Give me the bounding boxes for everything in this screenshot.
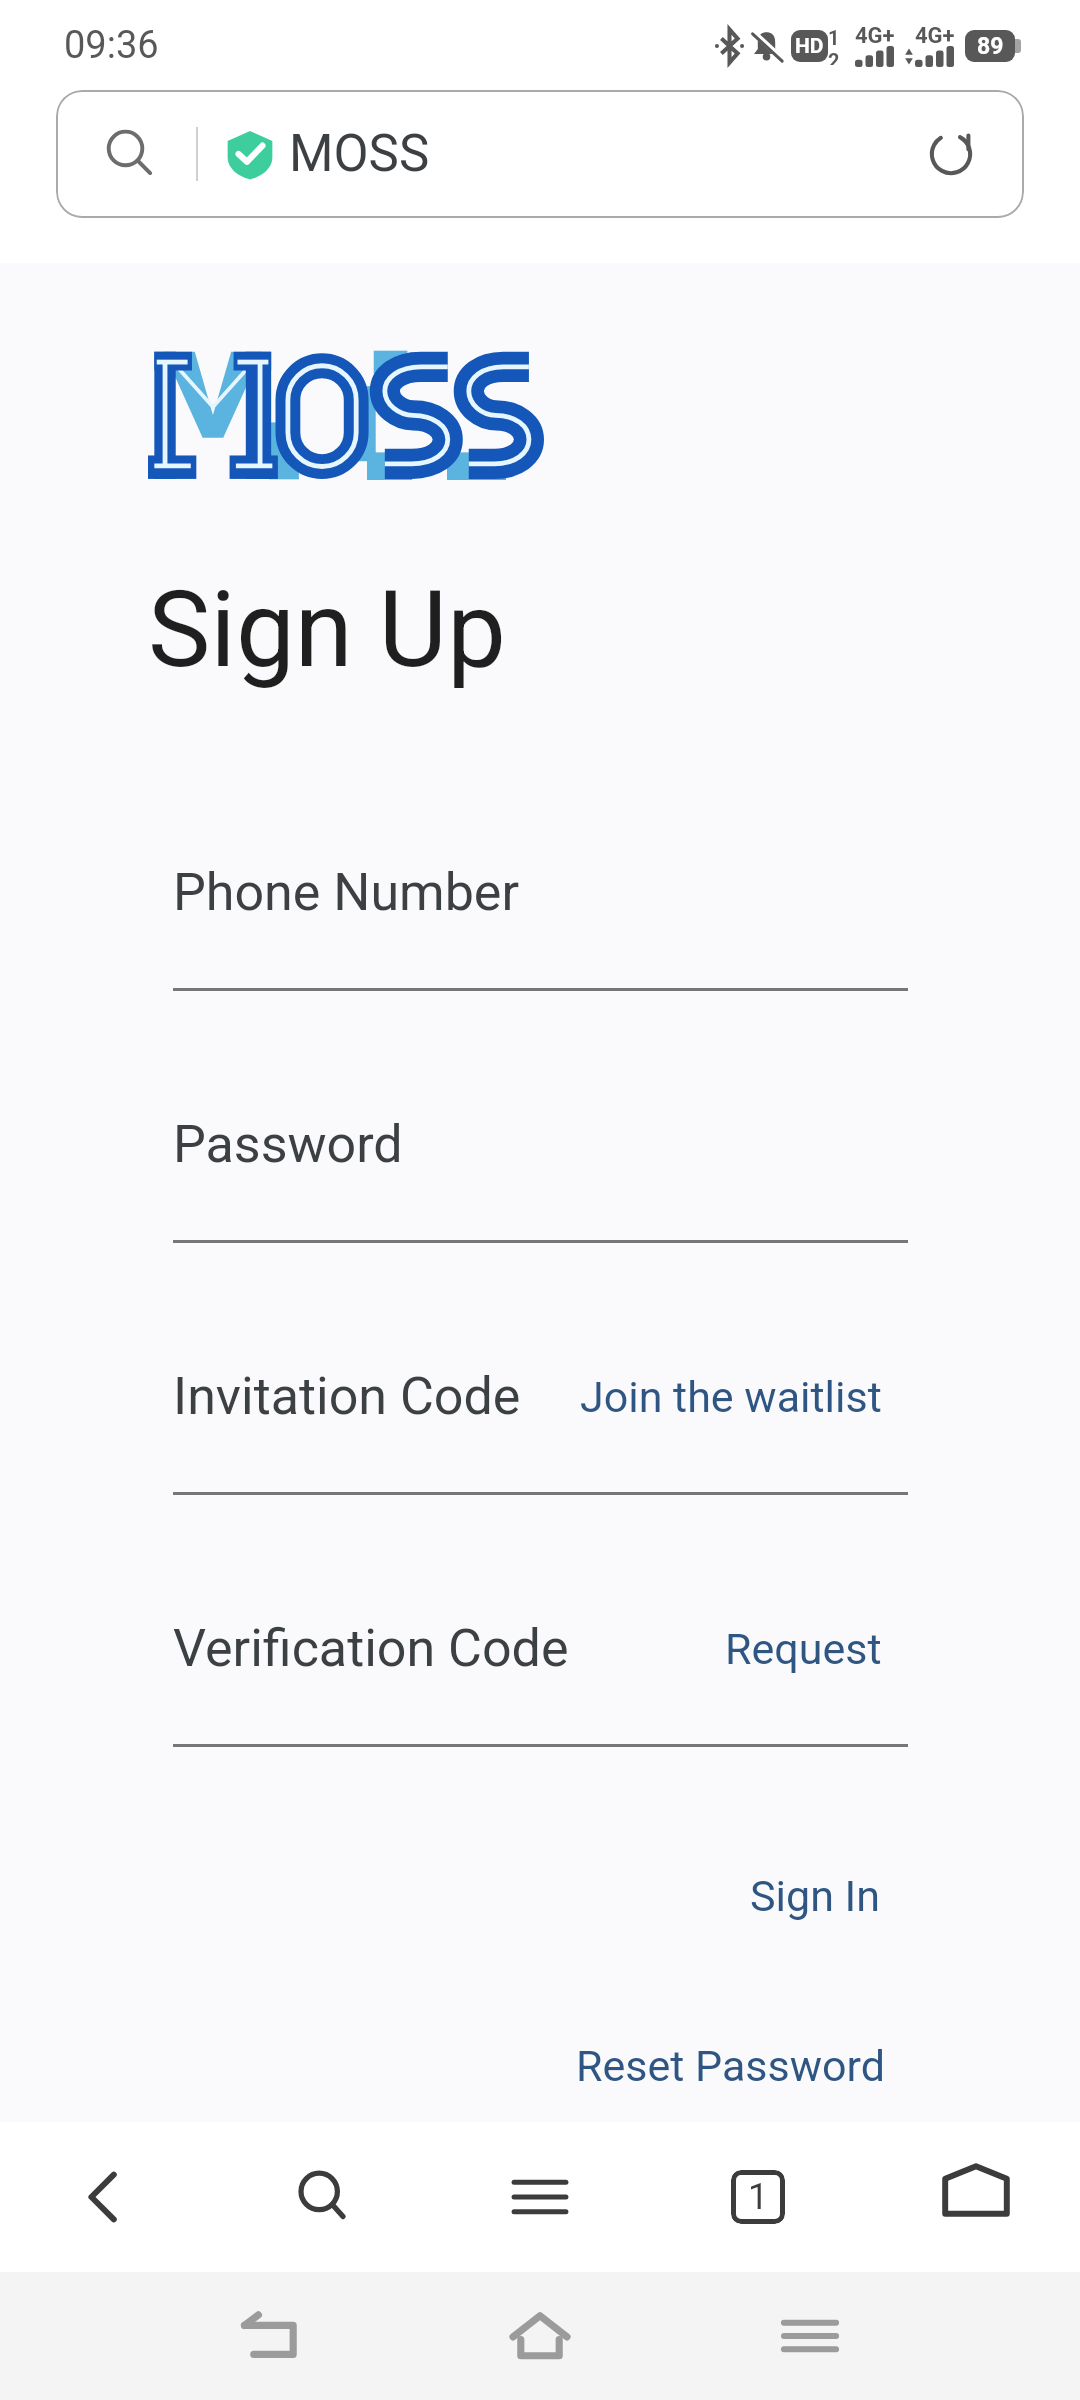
staticText: 2 — [828, 49, 840, 65]
staticText: Reset Password — [576, 2041, 885, 2091]
button[interactable]: Back — [44, 2137, 164, 2257]
button[interactable]: Sign In — [740, 1857, 890, 1935]
other: Search — [102, 126, 158, 182]
staticText: Invitation Code — [173, 1366, 521, 1427]
button[interactable]: Menu — [480, 2137, 600, 2257]
button[interactable]: Home — [470, 2272, 610, 2400]
button[interactable]: Search — [56, 90, 1024, 218]
staticText: 4G+ — [915, 23, 955, 49]
staticText: Verification Code — [173, 1618, 569, 1679]
staticText: 1 — [748, 2176, 769, 2218]
staticText: Sign Up — [148, 569, 506, 692]
button[interactable]: Reset Password — [566, 2027, 895, 2105]
button[interactable]: Request — [711, 1618, 908, 1679]
staticText: Request — [725, 1624, 882, 1674]
staticText: Password — [173, 1114, 403, 1175]
staticText: HD — [795, 34, 824, 59]
button[interactable]: Tabs — [698, 2137, 818, 2257]
button[interactable]: Home — [916, 2137, 1036, 2257]
staticText: Join the waitlist — [580, 1372, 882, 1422]
staticText: 1 — [828, 26, 840, 49]
button[interactable]: Back — [200, 2272, 340, 2400]
staticText: Sign In — [750, 1871, 880, 1921]
staticText: Phone Number — [173, 862, 520, 923]
staticText: 4G+ — [855, 23, 895, 49]
staticText: 09:36 — [64, 23, 159, 68]
other: Reload — [922, 125, 980, 183]
staticText: 89 — [977, 33, 1004, 60]
button[interactable]: Search — [262, 2137, 382, 2257]
button[interactable]: Join the waitlist — [566, 1366, 908, 1427]
button[interactable]: Recents — [740, 2272, 880, 2400]
staticText: MOSS — [289, 124, 430, 184]
